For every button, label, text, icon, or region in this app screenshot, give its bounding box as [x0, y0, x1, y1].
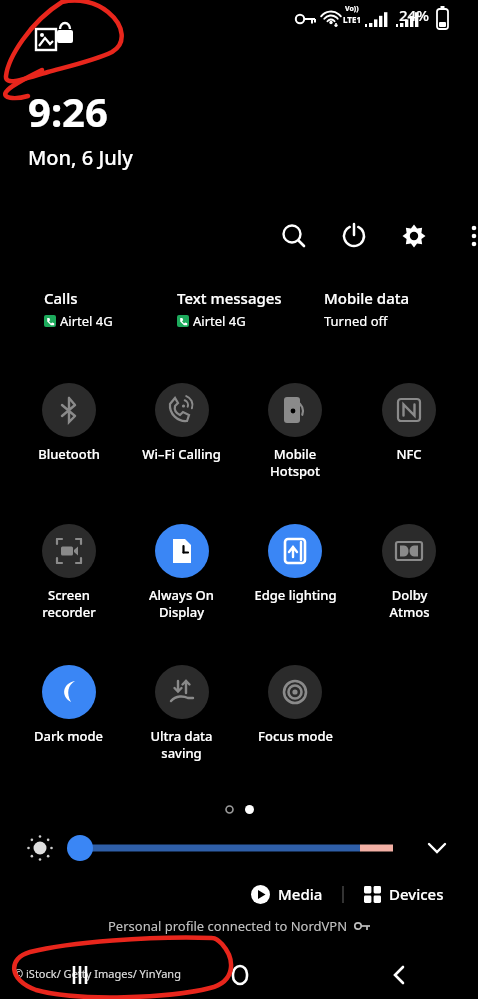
button[interactable]: Personal profile connected to NordVPN: [0, 917, 478, 935]
staticText: Always On Display: [149, 586, 214, 621]
button[interactable]: Power: [336, 218, 372, 254]
button[interactable]: Focus mode: [238, 665, 352, 745]
button[interactable]: Brightness: [60, 830, 410, 866]
staticText: Bluetooth: [38, 445, 100, 463]
staticText: Dark mode: [34, 727, 103, 745]
staticText: Turned off: [324, 312, 388, 330]
button[interactable]: Recents: [0, 951, 160, 999]
button[interactable]: Text messages: [177, 288, 324, 330]
button[interactable]: Mobile Hotspot: [238, 383, 352, 480]
staticText: Personal profile connected to NordVPN: [108, 917, 348, 935]
button[interactable]: Mobile data: [324, 288, 458, 330]
staticText: NFC: [396, 445, 422, 463]
staticText: Edge lighting: [254, 586, 337, 604]
staticText: © iStock/ Getty Images/ YinYang: [14, 966, 181, 981]
button[interactable]: Calls: [44, 288, 177, 330]
button[interactable]: Bluetooth: [12, 383, 125, 463]
staticText: Mon, 6 July: [28, 144, 133, 171]
staticText: Wi–Fi Calling: [142, 445, 221, 463]
button[interactable]: Ultra data saving: [125, 665, 238, 762]
button[interactable]: Screen recorder: [12, 524, 125, 621]
button[interactable]: Settings: [396, 218, 432, 254]
staticText: Devices: [389, 884, 444, 904]
staticText: Mobile data: [324, 288, 410, 308]
staticText: Ultra data saving: [150, 727, 213, 762]
staticText: Vo)): [345, 4, 359, 14]
staticText: Media: [278, 884, 323, 904]
button[interactable]: Expand: [418, 830, 456, 868]
button[interactable]: Edge lighting: [238, 524, 352, 604]
staticText: Mobile Hotspot: [270, 445, 320, 480]
button[interactable]: More options: [456, 218, 478, 254]
staticText: 9:26: [28, 84, 108, 138]
staticText: LTE1: [343, 14, 361, 25]
button[interactable]: Back: [319, 951, 478, 999]
button[interactable]: Devices: [358, 880, 450, 908]
staticText: Text messages: [177, 288, 282, 308]
button[interactable]: Always On Display: [125, 524, 238, 621]
staticText: Airtel 4G: [60, 312, 113, 330]
button[interactable]: Media: [245, 880, 329, 908]
staticText: Focus mode: [258, 727, 333, 745]
staticText: 24%: [399, 5, 429, 25]
button[interactable]: NFC: [352, 383, 466, 463]
button[interactable]: Wi–Fi Calling: [125, 383, 238, 463]
button[interactable]: Search: [276, 218, 312, 254]
button[interactable]: Dolby Atmos: [352, 524, 466, 621]
staticText: Dolby Atmos: [389, 586, 430, 621]
button[interactable]: Dark mode: [12, 665, 125, 745]
staticText: Screen recorder: [42, 586, 96, 621]
button[interactable]: Home: [160, 951, 319, 999]
staticText: Calls: [44, 288, 78, 308]
staticText: Airtel 4G: [193, 312, 246, 330]
